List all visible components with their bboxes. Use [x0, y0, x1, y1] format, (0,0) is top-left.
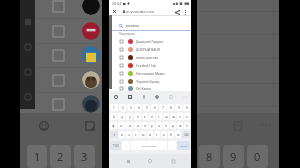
button[interactable]: 8 [167, 104, 174, 111]
button[interactable]: Menu item [24, 18, 32, 26]
button[interactable]: 6 [151, 104, 158, 111]
button[interactable]: р [149, 122, 155, 129]
button[interactable]: н [149, 113, 155, 120]
button[interactable]: ч [126, 131, 132, 138]
staticText: ь [163, 133, 165, 137]
staticText: 2 [57, 149, 64, 164]
button[interactable]: а [134, 122, 141, 129]
staticText: ю [177, 133, 180, 137]
button[interactable]: Emoji [39, 121, 49, 131]
button[interactable]: Menu item [24, 93, 32, 101]
button[interactable]: ю [175, 131, 181, 138]
button[interactable]: More options [182, 9, 188, 15]
button[interactable]: 3 [127, 104, 134, 111]
staticText: ш [165, 115, 168, 119]
button[interactable]: 7 [159, 104, 166, 111]
button[interactable]: Home [146, 157, 154, 165]
button[interactable]: Menu item [24, 43, 32, 51]
button[interactable]: м [140, 131, 146, 138]
button[interactable]: 0 [183, 104, 190, 111]
button[interactable]: х [184, 113, 190, 120]
staticText: д [172, 124, 174, 128]
button[interactable]: Recent apps [169, 157, 177, 165]
staticText: 1 [113, 106, 115, 110]
button[interactable]: Football Hub [109, 61, 191, 69]
staticText: . [172, 144, 173, 148]
button[interactable]: ⇧ [110, 131, 118, 138]
button[interactable]: к [134, 113, 141, 120]
staticText: н [151, 115, 153, 119]
button[interactable]: л [163, 122, 169, 129]
button[interactable]: Close [111, 8, 118, 15]
button[interactable]: Clipboard [167, 93, 175, 101]
button[interactable]: с [133, 131, 139, 138]
button[interactable]: ф [110, 122, 117, 129]
button[interactable]: Settings [153, 93, 161, 101]
button[interactable]: 9 [223, 145, 244, 168]
staticText: ч [128, 133, 130, 137]
button[interactable]: Voice input [140, 93, 148, 101]
button[interactable]: 0 [247, 145, 268, 168]
button[interactable]: т [154, 131, 160, 138]
button[interactable]: 1 [27, 145, 47, 168]
button[interactable]: ⌫ [182, 131, 190, 138]
button[interactable]: ь [161, 131, 167, 138]
button[interactable]: Back [124, 157, 132, 165]
button[interactable]: . [168, 141, 176, 150]
button[interactable]: 3 [74, 145, 95, 168]
button[interactable]: ◂ Русский ▸ [131, 141, 167, 150]
staticText: ы [120, 124, 123, 128]
button[interactable]: щ [170, 113, 176, 120]
button[interactable]: Menu item [24, 68, 32, 76]
button[interactable]: Поиск [177, 141, 190, 150]
button[interactable]: , [122, 141, 130, 150]
staticText: 7 [162, 106, 164, 110]
button[interactable]: ш [163, 113, 169, 120]
button[interactable]: ?123 [110, 141, 121, 150]
button[interactable]: Ой Какая [109, 85, 191, 91]
button[interactable]: Share [173, 8, 181, 16]
button[interactable]: э [184, 122, 190, 129]
button[interactable]: Stickers [126, 93, 134, 101]
button[interactable]: ж [177, 122, 183, 129]
staticText: Поиск [180, 144, 188, 147]
button[interactable]: п [142, 122, 148, 129]
button[interactable]: з [177, 113, 183, 120]
button[interactable]: Дмитрий Гордон [109, 37, 191, 45]
button[interactable]: в [126, 122, 133, 129]
button[interactable]: б [168, 131, 174, 138]
staticText: ф [112, 124, 115, 128]
button[interactable]: 2 [50, 145, 71, 168]
button[interactable]: Emoji [112, 93, 120, 101]
button[interactable]: Чёрный Бумер [109, 77, 191, 85]
button[interactable]: котик для лап [109, 53, 191, 61]
button[interactable]: 2 [119, 104, 126, 111]
button[interactable]: о [156, 122, 162, 129]
button[interactable]: д [170, 122, 176, 129]
button[interactable]: 8 [199, 145, 220, 168]
staticText: 5 [146, 106, 148, 110]
staticText: 1 [34, 149, 41, 164]
staticText: 2 [122, 106, 124, 110]
button[interactable]: ц [118, 113, 125, 120]
button[interactable]: 4 [135, 104, 142, 111]
staticText: м [142, 133, 145, 137]
staticText: г [158, 115, 160, 119]
button[interactable]: е [142, 113, 148, 120]
button[interactable]: Clipboard [233, 121, 243, 131]
button[interactable]: Настоящие Мамы [109, 69, 191, 77]
staticText: 20:04 [112, 1, 122, 6]
button[interactable]: ДОБРЫЙ ВАНЯ [109, 45, 191, 53]
button[interactable]: г [156, 113, 162, 120]
button[interactable]: 9 [175, 104, 182, 111]
button[interactable]: ы [118, 122, 125, 129]
button[interactable]: 5 [143, 104, 150, 111]
staticText: котик для лап [136, 55, 159, 59]
button[interactable]: у [126, 113, 133, 120]
button[interactable]: 1 [110, 104, 118, 111]
button[interactable]: й [110, 113, 117, 120]
button[interactable]: и [147, 131, 153, 138]
button[interactable]: Stickers [85, 121, 95, 131]
button[interactable]: я [119, 131, 125, 138]
